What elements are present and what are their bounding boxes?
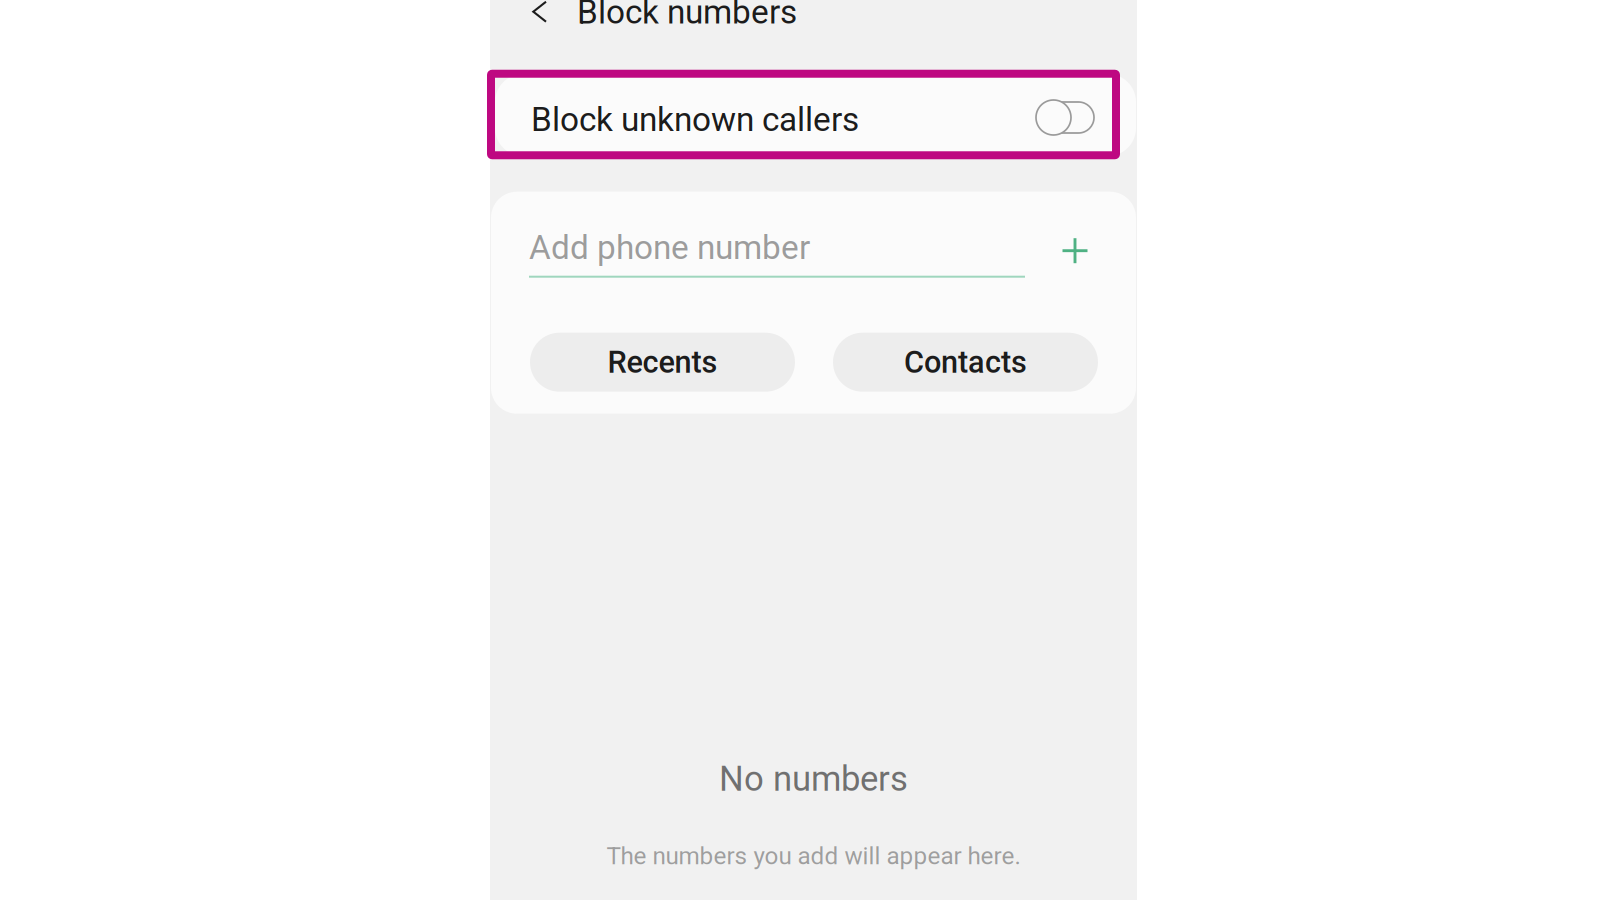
button[interactable]: Block unknown callers <box>495 74 1136 156</box>
button[interactable]: Add phone number <box>529 232 1025 264</box>
staticText: Contacts <box>904 344 1027 380</box>
staticText: Block unknown callers <box>531 100 859 139</box>
staticText: Add phone number <box>529 228 810 267</box>
staticText: The numbers you add will appear here. <box>606 842 1020 870</box>
button[interactable]: Recents <box>530 333 795 392</box>
button[interactable]: Back <box>522 0 558 28</box>
staticText: Recents <box>607 344 717 380</box>
staticText: Block numbers <box>577 0 797 32</box>
button[interactable]: Contacts <box>833 333 1098 392</box>
button[interactable]: Add number <box>1052 228 1098 274</box>
staticText: No numbers <box>719 759 908 799</box>
